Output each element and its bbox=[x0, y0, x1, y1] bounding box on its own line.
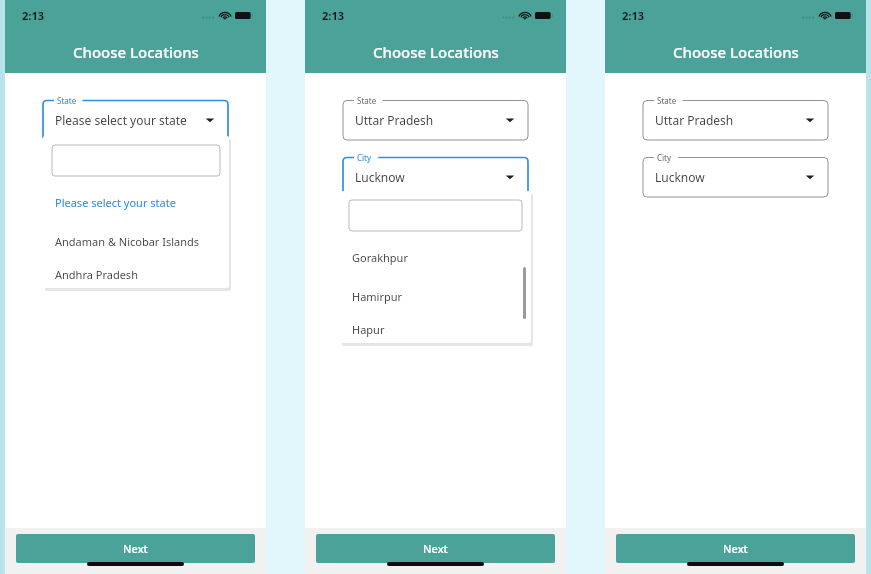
button[interactable]: State bbox=[43, 93, 228, 140]
button[interactable]: Open State dropdown bbox=[805, 115, 815, 125]
button[interactable]: Open State dropdown bbox=[205, 115, 215, 125]
staticText: Next bbox=[123, 541, 148, 556]
button[interactable]: State bbox=[643, 93, 828, 140]
button[interactable]: Next bbox=[316, 534, 555, 563]
staticText: Uttar Pradesh bbox=[655, 112, 734, 128]
staticText: Hamirpur bbox=[352, 289, 403, 304]
button[interactable]: Hamirpur bbox=[340, 277, 531, 316]
staticText: Choose Locations bbox=[73, 42, 199, 62]
button[interactable]: Next bbox=[616, 534, 855, 563]
button[interactable]: Open City dropdown bbox=[505, 172, 515, 182]
staticText: Choose Locations bbox=[373, 42, 499, 62]
staticText: Next bbox=[723, 541, 748, 556]
staticText: Lucknow bbox=[655, 169, 705, 185]
button[interactable]: Please select your state bbox=[43, 183, 229, 222]
staticText: Please select your state bbox=[55, 112, 187, 128]
button[interactable]: Hapur bbox=[340, 316, 531, 343]
staticText: Next bbox=[423, 541, 448, 556]
button[interactable]: Next bbox=[16, 534, 255, 563]
staticText: Hapur bbox=[352, 322, 385, 337]
staticText: Lucknow bbox=[355, 169, 405, 185]
button[interactable]: City bbox=[643, 150, 828, 197]
staticText: 2:13 bbox=[22, 8, 44, 23]
button[interactable]: State bbox=[343, 93, 528, 140]
staticText: Uttar Pradesh bbox=[355, 112, 434, 128]
staticText: Andhra Pradesh bbox=[55, 267, 138, 282]
button[interactable]: Open City dropdown bbox=[805, 172, 815, 182]
button[interactable]: City bbox=[343, 150, 528, 197]
button[interactable]: Search bbox=[349, 200, 522, 231]
staticText: 2:13 bbox=[622, 8, 644, 23]
button[interactable]: Open State dropdown bbox=[505, 115, 515, 125]
staticText: 2:13 bbox=[322, 8, 344, 23]
staticText: City bbox=[357, 152, 372, 163]
staticText: Please select your state bbox=[55, 195, 176, 210]
staticText: State bbox=[657, 95, 677, 106]
staticText: Andaman & Nicobar Islands bbox=[55, 234, 200, 249]
staticText: City bbox=[657, 152, 672, 163]
staticText: State bbox=[357, 95, 377, 106]
button[interactable]: Gorakhpur bbox=[340, 238, 531, 277]
button[interactable]: Andhra Pradesh bbox=[43, 261, 229, 288]
staticText: State bbox=[57, 95, 77, 106]
button[interactable]: Andaman & Nicobar Islands bbox=[43, 222, 229, 261]
staticText: Choose Locations bbox=[673, 42, 799, 62]
staticText: Gorakhpur bbox=[352, 250, 408, 265]
button[interactable]: Search bbox=[52, 145, 220, 176]
